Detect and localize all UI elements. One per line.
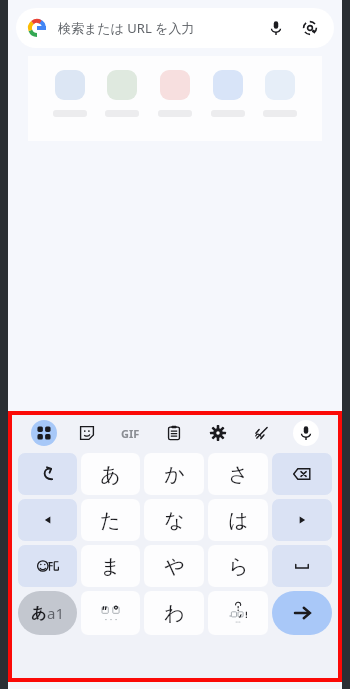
button[interactable]: Emoji and symbols (18, 545, 77, 587)
button[interactable]: わ (144, 591, 204, 635)
button[interactable]: Cursor left (18, 499, 77, 541)
button[interactable]: Enter (272, 591, 332, 635)
staticText: ら (228, 554, 249, 579)
staticText: た (100, 508, 121, 533)
staticText: や (164, 554, 185, 579)
button[interactable]: Dakuten and small kana (81, 591, 140, 635)
button[interactable]: た (81, 499, 140, 541)
button[interactable]: さ (208, 453, 268, 495)
staticText: な (164, 508, 185, 533)
staticText: さ (228, 462, 249, 487)
button[interactable]: Google Lens (298, 16, 322, 40)
button[interactable]: Backspace (272, 453, 332, 495)
button[interactable]: ら (208, 545, 268, 587)
staticText: あ (31, 604, 47, 623)
button[interactable]: Voice input (284, 418, 328, 448)
button[interactable]: Cursor right (272, 499, 332, 541)
button[interactable]: 検索または URL を入力 (16, 8, 334, 48)
button[interactable]: Stickers (65, 418, 108, 448)
button[interactable]: Key (18, 453, 77, 495)
button[interactable]: Punctuation (208, 591, 268, 635)
button[interactable]: Switch input mode (18, 591, 77, 635)
button[interactable]: Voice search (264, 16, 288, 40)
button[interactable]: や (144, 545, 204, 587)
staticText: 検索または URL を入力 (58, 19, 264, 37)
button[interactable]: Clipboard (152, 418, 196, 448)
button[interactable]: か (144, 453, 204, 495)
button[interactable]: Handwriting (240, 418, 284, 448)
button[interactable]: Space (272, 545, 332, 587)
staticText: a1 (47, 603, 64, 623)
staticText: か (164, 462, 185, 487)
staticText: ま (100, 554, 121, 579)
button[interactable]: は (208, 499, 268, 541)
staticText: わ (164, 601, 185, 626)
staticText: は (228, 508, 249, 533)
button[interactable]: な (144, 499, 204, 541)
button[interactable]: GIF (108, 418, 152, 448)
button[interactable]: Settings (196, 418, 240, 448)
button[interactable]: あ (81, 453, 140, 495)
staticText: GIF (121, 426, 140, 441)
button[interactable]: Keyboard layouts (22, 418, 65, 448)
staticText: あ (100, 462, 121, 487)
button[interactable]: ま (81, 545, 140, 587)
